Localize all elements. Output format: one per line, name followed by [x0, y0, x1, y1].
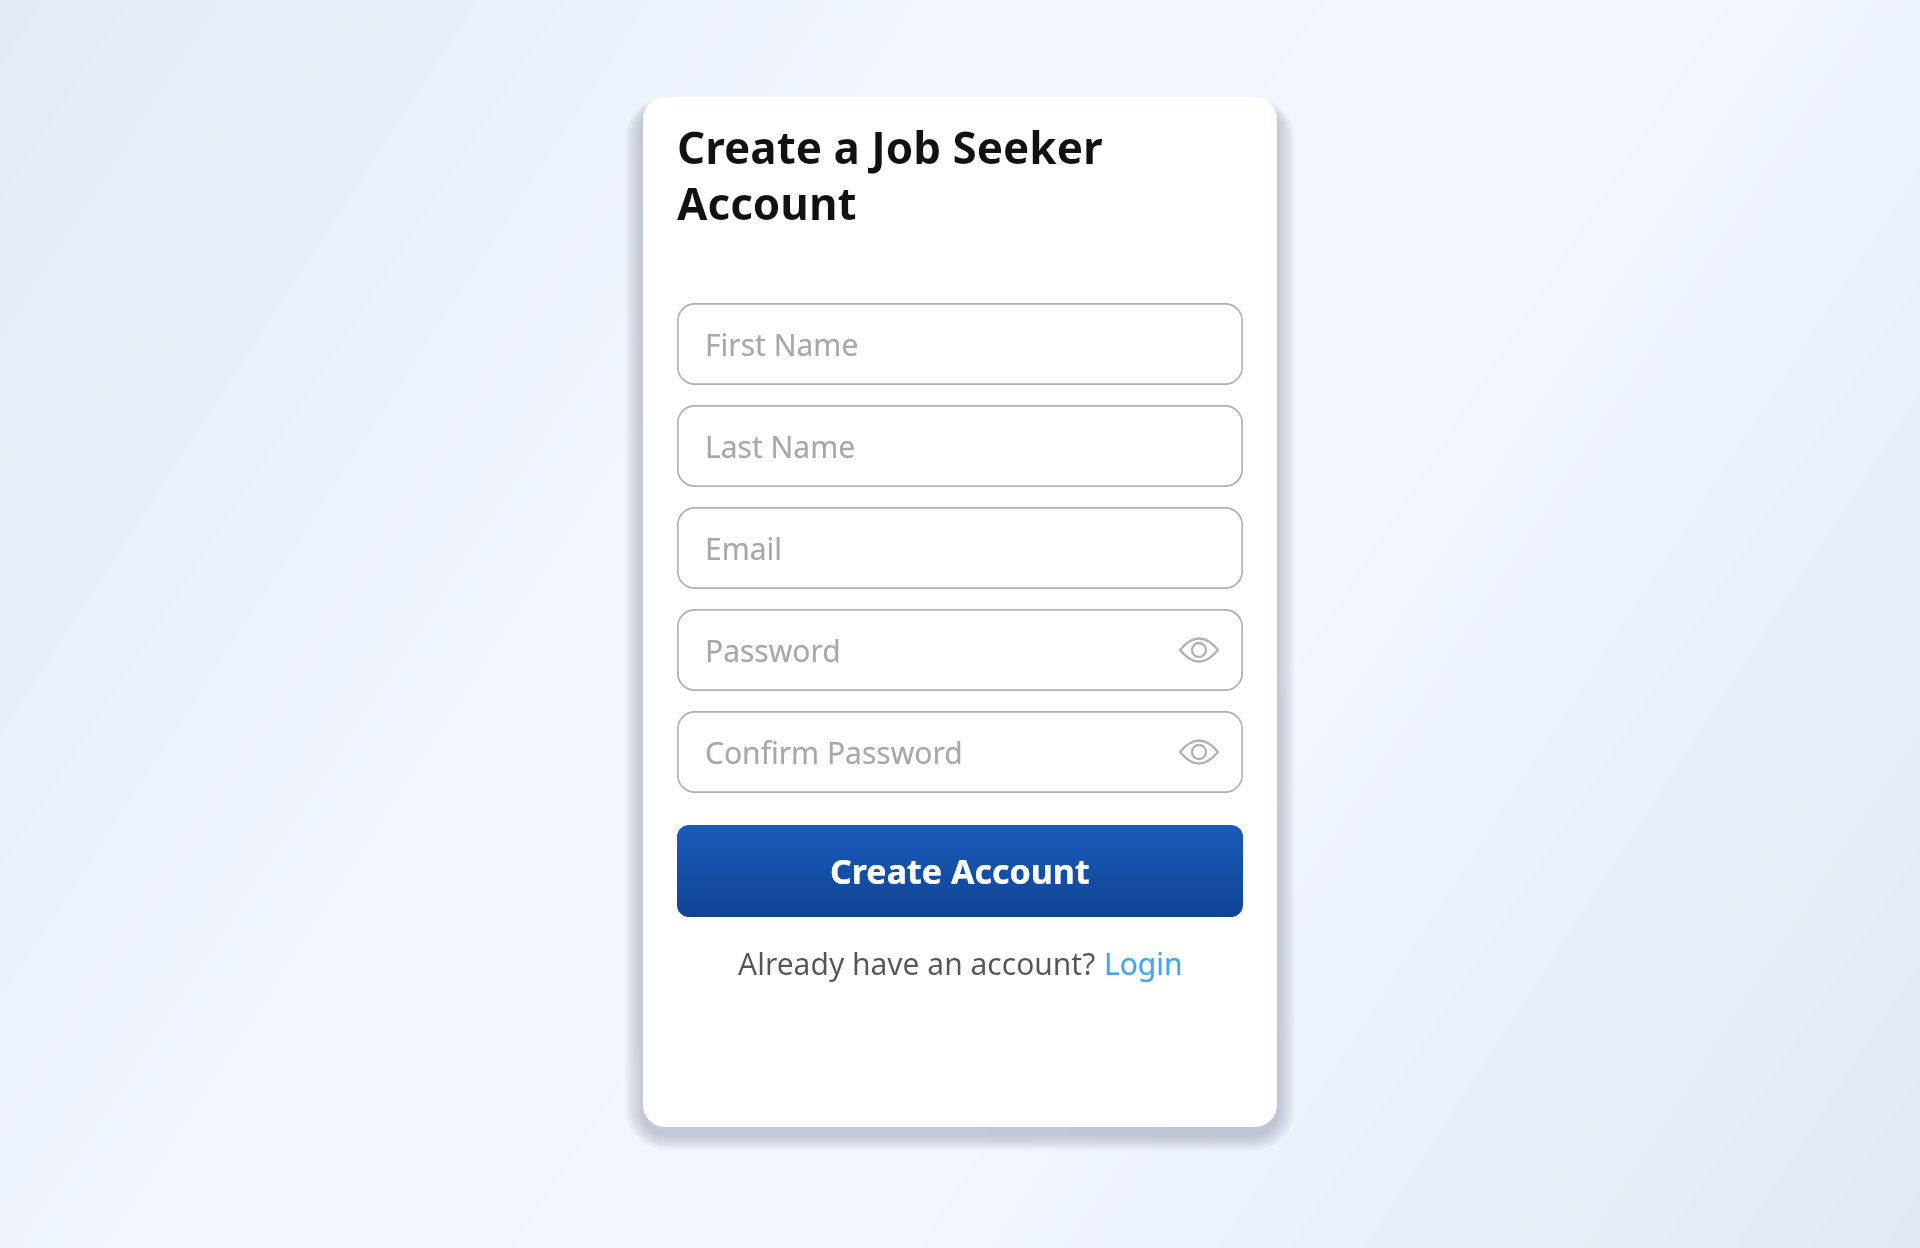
button[interactable]: Show password: [1173, 726, 1225, 778]
button[interactable]: Email: [677, 507, 1243, 589]
staticText: Create Account: [830, 848, 1090, 894]
staticText: Email: [705, 528, 783, 569]
button[interactable]: Password: [677, 609, 1243, 691]
button[interactable]: Create Account: [677, 825, 1243, 917]
staticText: Create a Job Seeker Account: [677, 117, 1103, 233]
staticText: Login: [1104, 943, 1183, 984]
staticText: Last Name: [705, 426, 856, 467]
staticText: Password: [705, 630, 841, 671]
button[interactable]: Last Name: [677, 405, 1243, 487]
staticText: First Name: [705, 324, 859, 365]
staticText: Already have an account?: [738, 943, 1104, 984]
button[interactable]: Show password: [1173, 624, 1225, 676]
button[interactable]: First Name: [677, 303, 1243, 385]
button[interactable]: Confirm Password: [677, 711, 1243, 793]
button[interactable]: Already have an account?: [677, 943, 1243, 984]
staticText: Confirm Password: [705, 732, 963, 773]
